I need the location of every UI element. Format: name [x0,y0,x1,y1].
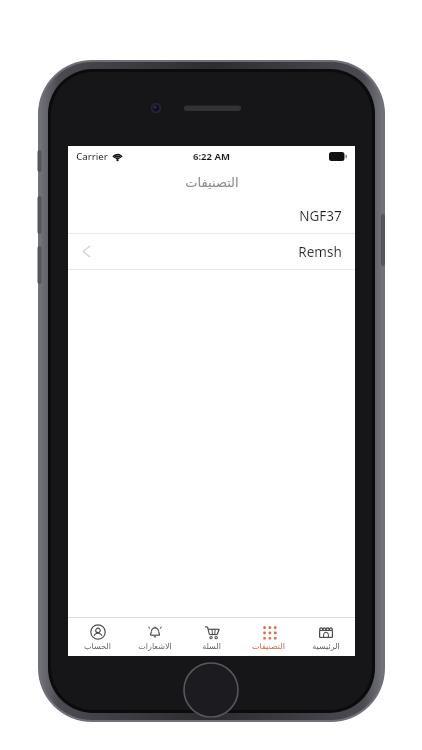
staticText: Remsh [298,243,342,261]
button[interactable]: Notifications [127,624,182,651]
staticText: الاشعارات [138,642,172,651]
button[interactable]: Home [298,624,353,651]
staticText: الحساب [84,642,111,651]
staticText: Carrier [76,150,108,163]
button[interactable]: NGF37 [68,198,355,233]
staticText: NGF37 [299,207,342,225]
staticText: الرئيسية [312,642,340,651]
staticText: التصنيفات [252,642,285,651]
staticText: 6:22 AM [193,150,230,163]
staticText: السلة [202,642,221,651]
button[interactable]: Remsh [68,234,355,269]
button[interactable]: Cart [184,624,239,651]
button[interactable]: Account [70,624,125,651]
staticText: التصنيفات [185,175,239,190]
button[interactable]: Categories [241,624,296,651]
